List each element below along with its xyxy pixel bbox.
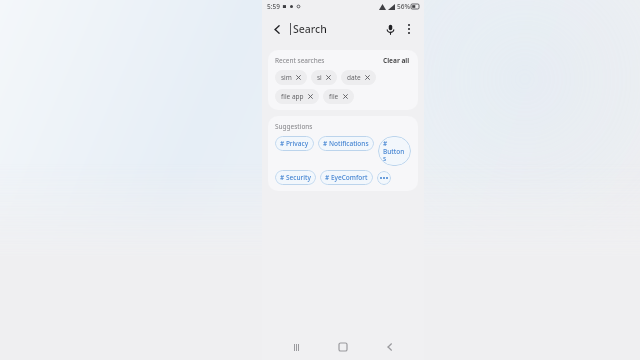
staticText: Clear all xyxy=(383,56,410,65)
button[interactable]: More options xyxy=(400,20,418,38)
staticText: # Buttons xyxy=(383,139,406,163)
staticText: file xyxy=(329,92,339,101)
button[interactable]: # EyeComfort xyxy=(320,170,373,185)
button[interactable]: Back xyxy=(377,334,403,360)
button[interactable]: Recent apps xyxy=(283,334,309,360)
button[interactable]: # Security xyxy=(275,170,316,185)
button[interactable]: # Buttons xyxy=(378,136,411,166)
staticText: file app xyxy=(281,92,304,101)
button[interactable]: si xyxy=(311,70,337,85)
button[interactable]: file xyxy=(323,89,354,104)
button[interactable]: Back xyxy=(268,20,286,38)
button[interactable]: Search xyxy=(293,22,380,36)
button[interactable]: More suggestions xyxy=(377,171,391,185)
staticText: sim xyxy=(281,73,292,82)
staticText: 56% xyxy=(397,2,410,11)
staticText: Suggestions xyxy=(275,122,313,131)
button[interactable]: Voice search xyxy=(380,19,400,39)
staticText: Recent searches xyxy=(275,56,325,65)
staticText: date xyxy=(347,73,361,82)
staticText: # Privacy xyxy=(280,139,309,148)
button[interactable]: # Privacy xyxy=(275,136,314,151)
button[interactable]: Clear all xyxy=(382,56,411,65)
staticText: Search xyxy=(293,22,327,36)
staticText: # Notifications xyxy=(323,139,369,148)
staticText: # Security xyxy=(280,173,311,182)
button[interactable]: file app xyxy=(275,89,319,104)
staticText: si xyxy=(317,73,322,82)
button[interactable]: Home xyxy=(330,334,356,360)
button[interactable]: sim xyxy=(275,70,307,85)
staticText: # EyeComfort xyxy=(325,173,368,182)
button[interactable]: # Notifications xyxy=(318,136,374,151)
staticText: 5:59 xyxy=(267,2,280,11)
button[interactable]: date xyxy=(341,70,376,85)
